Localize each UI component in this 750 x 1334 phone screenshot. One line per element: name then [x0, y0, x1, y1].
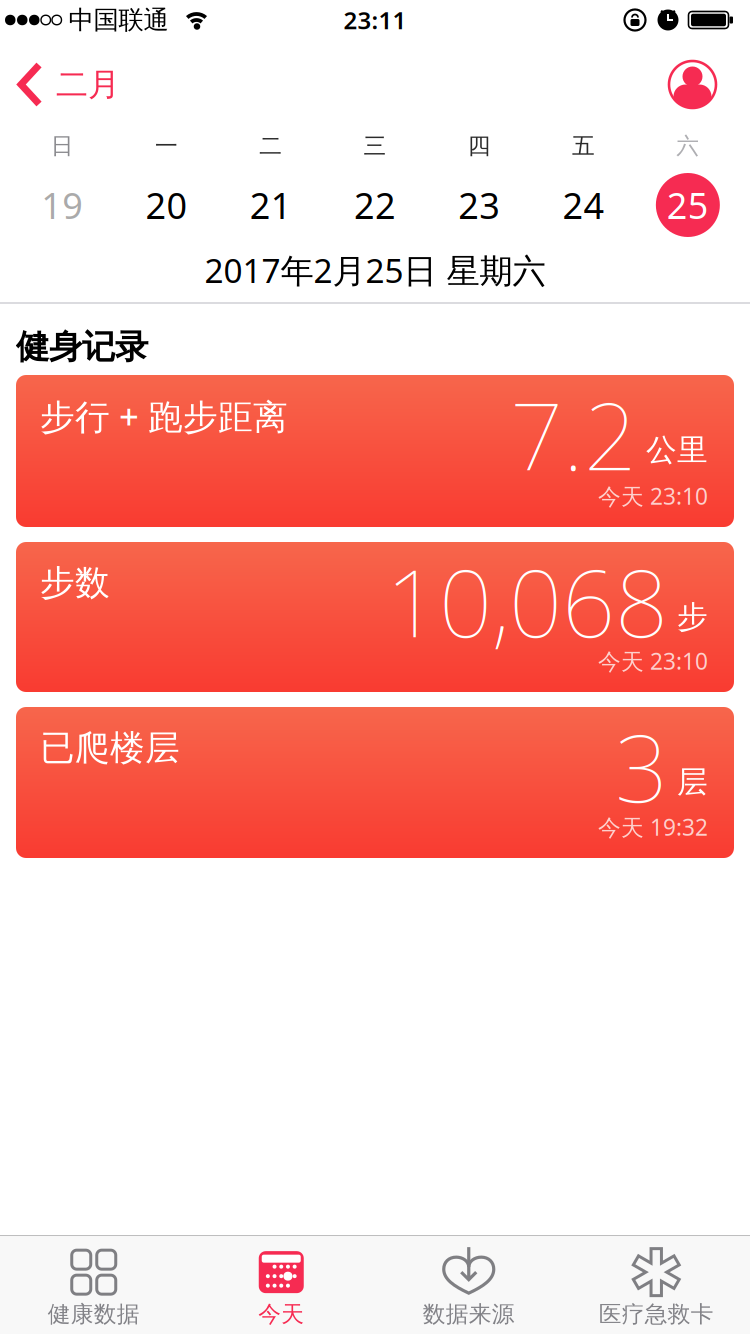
staticText: 二月 [56, 65, 120, 104]
button[interactable]: 二月 [17, 62, 120, 107]
staticText: 23 [458, 181, 500, 229]
staticText: 数据来源 [423, 1300, 515, 1328]
button[interactable]: 已爬楼层 [0, 707, 750, 858]
staticText: 步数 [40, 562, 110, 604]
staticText: 四 [468, 132, 491, 160]
staticText: 23:11 [343, 4, 406, 36]
staticText: 今天 23:10 [598, 646, 708, 676]
button[interactable]: 21 [219, 173, 323, 237]
staticText: 医疗急救卡 [599, 1300, 714, 1328]
button[interactable]: 24 [531, 173, 636, 237]
staticText: 层 [677, 763, 708, 801]
staticText: 25 [667, 181, 709, 229]
button[interactable] [669, 61, 716, 108]
button[interactable]: 步数 [0, 542, 750, 692]
staticText: 7.2 [510, 372, 637, 496]
button[interactable]: 医疗急救卡 [562, 1236, 750, 1334]
button[interactable]: 健康数据 [0, 1236, 187, 1334]
button[interactable]: 数据来源 [375, 1236, 562, 1334]
staticText: 六 [676, 132, 699, 160]
button[interactable]: 今天 [187, 1236, 375, 1334]
button[interactable]: 20 [114, 173, 219, 237]
button[interactable]: 25 [636, 173, 740, 237]
staticText: 中国联通 [68, 4, 168, 35]
staticText: 三 [363, 132, 386, 160]
staticText: 五 [572, 132, 595, 160]
staticText: 22 [354, 181, 396, 229]
staticText: 健康数据 [48, 1300, 140, 1328]
staticText: 20 [145, 181, 187, 229]
staticText: 日 [51, 132, 74, 160]
staticText: 一 [155, 132, 178, 160]
staticText: 2017年2月25日 星期六 [204, 248, 545, 292]
staticText: 今天 [258, 1300, 304, 1328]
staticText: 今天 19:32 [598, 812, 708, 842]
staticText: 已爬楼层 [40, 727, 180, 769]
staticText: 24 [563, 181, 605, 229]
staticText: 10,068 [386, 539, 668, 663]
button[interactable]: 23 [427, 173, 531, 237]
staticText: 步行 + 跑步距离 [40, 393, 288, 439]
staticText: 步 [677, 598, 708, 636]
staticText: 21 [250, 181, 292, 229]
button[interactable]: 22 [323, 173, 427, 237]
staticText: 二 [259, 132, 282, 160]
staticText: 3 [615, 704, 668, 828]
staticText: 今天 23:10 [598, 481, 708, 511]
staticText: 健身记录 [16, 326, 148, 367]
staticText: 19 [41, 181, 83, 229]
button[interactable]: 步行 + 跑步距离 [0, 375, 750, 527]
button[interactable]: 19 [10, 173, 114, 237]
staticText: 公里 [646, 431, 708, 469]
